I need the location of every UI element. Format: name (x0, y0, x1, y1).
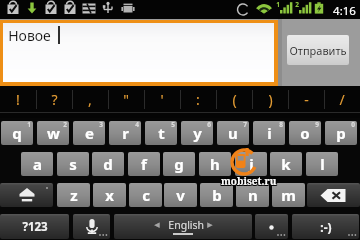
button[interactable]: f (128, 152, 160, 176)
button[interactable]: k (270, 152, 302, 176)
button[interactable]: x (93, 183, 126, 207)
button[interactable]: Shift (0, 183, 53, 207)
staticText: h (210, 154, 220, 174)
staticText: d (103, 154, 113, 174)
staticText: mobiset.ru (220, 174, 276, 188)
staticText: q (12, 123, 22, 143)
staticText: :-) (320, 219, 332, 235)
button[interactable]: ? (36, 86, 72, 113)
button[interactable]: ! (0, 86, 36, 113)
button[interactable]: a (21, 152, 53, 176)
button[interactable]: m (272, 183, 305, 207)
staticText: c (142, 185, 150, 205)
staticText: m (281, 185, 296, 205)
staticText: t (158, 123, 165, 143)
button[interactable]: t (145, 121, 177, 145)
staticText: o (300, 123, 310, 143)
button[interactable]: w (37, 121, 69, 145)
button[interactable]: :-) (292, 214, 359, 239)
staticText: 1 (27, 121, 31, 129)
staticText: k (281, 154, 291, 174)
button[interactable]: ( (216, 86, 252, 113)
button[interactable]: c (129, 183, 162, 207)
button[interactable]: ?123 (0, 214, 69, 239)
button[interactable]: l (306, 152, 338, 176)
staticText: , (88, 90, 92, 109)
button[interactable]: i (253, 121, 285, 145)
staticText: mobiset.ru (222, 174, 278, 188)
button[interactable]: Period (255, 214, 288, 239)
staticText: ▶ (207, 221, 213, 229)
staticText: w (47, 123, 60, 143)
staticText: v (176, 185, 185, 205)
button[interactable]: , (72, 86, 108, 113)
staticText: mobiset.ru (221, 175, 277, 189)
button[interactable]: / (324, 86, 360, 113)
staticText: " (123, 90, 129, 109)
staticText: / (339, 90, 345, 109)
staticText: g (174, 154, 184, 174)
button[interactable]: r (109, 121, 141, 145)
staticText: - (304, 90, 309, 109)
staticText: r (122, 123, 129, 143)
staticText: x (105, 185, 114, 205)
staticText: ?123 (22, 219, 48, 235)
staticText: 6 (207, 121, 211, 129)
button[interactable]: v (164, 183, 197, 207)
staticText: mobiset.ru (222, 175, 278, 189)
button[interactable]: e (73, 121, 105, 145)
staticText: mobiset.ru (221, 173, 277, 187)
button[interactable]: y (181, 121, 213, 145)
staticText: : (196, 90, 200, 109)
staticText: y (193, 123, 202, 143)
staticText: 1 (276, 0, 280, 9)
staticText: n (248, 185, 258, 205)
staticText: mobiset.ru (220, 173, 276, 187)
staticText: p (336, 123, 346, 143)
button[interactable]: : (180, 86, 216, 113)
staticText: Новое (8, 26, 51, 45)
button[interactable]: ' (144, 86, 180, 113)
button[interactable]: - (288, 86, 324, 113)
button[interactable]: o (289, 121, 321, 145)
staticText: 2 (295, 0, 299, 9)
button[interactable]: g (163, 152, 195, 176)
staticText: ( (232, 90, 237, 109)
button[interactable]: q (1, 121, 33, 145)
staticText: ) (268, 90, 273, 109)
button[interactable]: b (200, 183, 233, 207)
button[interactable]: Space (114, 214, 252, 239)
staticText: a (33, 154, 42, 174)
staticText: 5 (171, 121, 175, 129)
staticText: z (70, 185, 78, 205)
button[interactable]: Новое (3, 23, 274, 82)
staticText: s (69, 154, 77, 174)
staticText: mobiset.ru (221, 174, 277, 188)
button[interactable]: d (92, 152, 124, 176)
button[interactable]: Отправить (287, 35, 349, 65)
button[interactable]: u (217, 121, 249, 145)
staticText: 0 (351, 121, 355, 129)
button[interactable]: Voice input (73, 214, 110, 239)
staticText: mobiset.ru (222, 173, 278, 187)
staticText: Отправить (289, 43, 347, 58)
button[interactable]: Backspace (307, 183, 360, 207)
button[interactable]: n (236, 183, 269, 207)
button[interactable]: j (235, 152, 267, 176)
staticText: 2 (63, 121, 67, 129)
staticText: 4:16 (333, 3, 356, 19)
button[interactable]: p (325, 121, 357, 145)
staticText: e (85, 123, 94, 143)
staticText: 3 (99, 121, 103, 129)
staticText: ' (160, 90, 164, 109)
button[interactable]: s (57, 152, 89, 176)
staticText: 7 (243, 121, 247, 129)
staticText: j (249, 154, 254, 174)
button[interactable]: z (57, 183, 90, 207)
staticText: English (160, 218, 207, 232)
staticText: f (141, 154, 147, 174)
button[interactable]: " (108, 86, 144, 113)
button[interactable]: h (199, 152, 231, 176)
staticText: l (320, 154, 325, 174)
button[interactable]: ) (252, 86, 288, 113)
